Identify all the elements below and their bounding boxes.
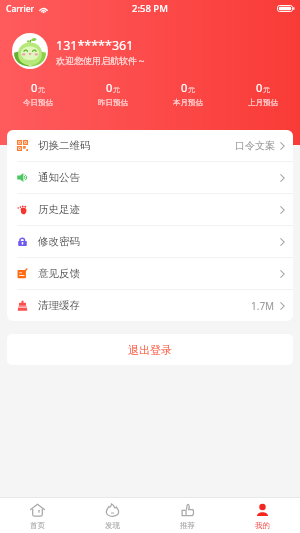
staticText: 元 bbox=[263, 85, 270, 94]
button[interactable]: 首页 bbox=[0, 498, 75, 533]
button[interactable]: 退出登录 bbox=[7, 334, 293, 365]
staticText: 清理缓存 bbox=[38, 299, 80, 312]
staticText: 推荐 bbox=[180, 521, 195, 530]
staticText: 意见反馈 bbox=[38, 267, 80, 280]
staticText: 口令文案 bbox=[235, 139, 275, 152]
button[interactable]: 意见反馈 bbox=[7, 258, 293, 289]
staticText: 首页 bbox=[30, 521, 45, 530]
staticText: 欢迎您使用启航软件～ bbox=[56, 55, 146, 66]
staticText: 0 bbox=[31, 80, 38, 95]
staticText: 我的 bbox=[255, 521, 270, 530]
button[interactable]: 通知公告 bbox=[7, 162, 293, 193]
staticText: 0 bbox=[181, 80, 188, 95]
button[interactable]: 我的 bbox=[225, 498, 300, 533]
staticText: 2:58 PM bbox=[132, 2, 168, 15]
staticText: Carrier bbox=[6, 3, 35, 15]
staticText: 上月预估 bbox=[248, 98, 278, 107]
staticText: 发现 bbox=[105, 521, 120, 530]
button[interactable]: 历史足迹 bbox=[7, 194, 293, 225]
button[interactable]: 推荐 bbox=[150, 498, 225, 533]
staticText: 通知公告 bbox=[38, 171, 80, 184]
button[interactable]: 发现 bbox=[75, 498, 150, 533]
staticText: 历史足迹 bbox=[38, 203, 80, 216]
staticText: 1.7M bbox=[251, 299, 275, 313]
staticText: 今日预估 bbox=[23, 98, 53, 107]
staticText: 131*****361 bbox=[56, 37, 134, 54]
staticText: 切换二维码 bbox=[38, 139, 91, 152]
staticText: 元 bbox=[188, 85, 195, 94]
staticText: 元 bbox=[38, 85, 45, 94]
staticText: 修改密码 bbox=[38, 235, 80, 248]
button[interactable]: 清理缓存 bbox=[7, 290, 293, 321]
staticText: 0 bbox=[106, 80, 113, 95]
staticText: 本月预估 bbox=[173, 98, 203, 107]
staticText: 昨日预估 bbox=[98, 98, 128, 107]
staticText: 0 bbox=[256, 80, 263, 95]
staticText: 退出登录 bbox=[128, 343, 172, 357]
staticText: 元 bbox=[113, 85, 120, 94]
button[interactable]: 切换二维码 bbox=[7, 130, 293, 161]
button[interactable]: 修改密码 bbox=[7, 226, 293, 257]
